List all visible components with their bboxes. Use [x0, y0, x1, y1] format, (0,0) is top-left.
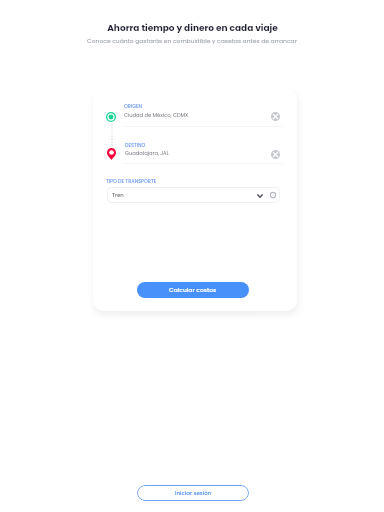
staticText: TIPO DE TRANSPORTE [106, 178, 157, 185]
button[interactable]: DESTINO [98, 137, 268, 164]
staticText: Ahorra tiempo y dinero en cada viaje [107, 22, 278, 35]
button[interactable]: ORIGEN [98, 98, 268, 125]
staticText: Conoce cuánto gastarás en combustible y … [87, 37, 297, 45]
button[interactable]: Calcular costos [137, 282, 249, 298]
staticText: Iniciar sesión [175, 489, 212, 497]
staticText: Calcular costos [169, 286, 217, 294]
staticText: Ciudad de México, CDMX [124, 112, 189, 119]
button[interactable]: Iniciar sesión [137, 485, 249, 501]
staticText: DESTINO [125, 142, 146, 149]
button[interactable]: Borrar [271, 112, 280, 121]
staticText: Guadalajara, JAL [125, 150, 169, 157]
button[interactable]: Ayuda [269, 191, 277, 199]
button[interactable]: Tren [107, 187, 280, 203]
staticText: ORIGEN [124, 103, 143, 110]
staticText: Tren [112, 191, 124, 198]
button[interactable]: Borrar [271, 150, 280, 159]
